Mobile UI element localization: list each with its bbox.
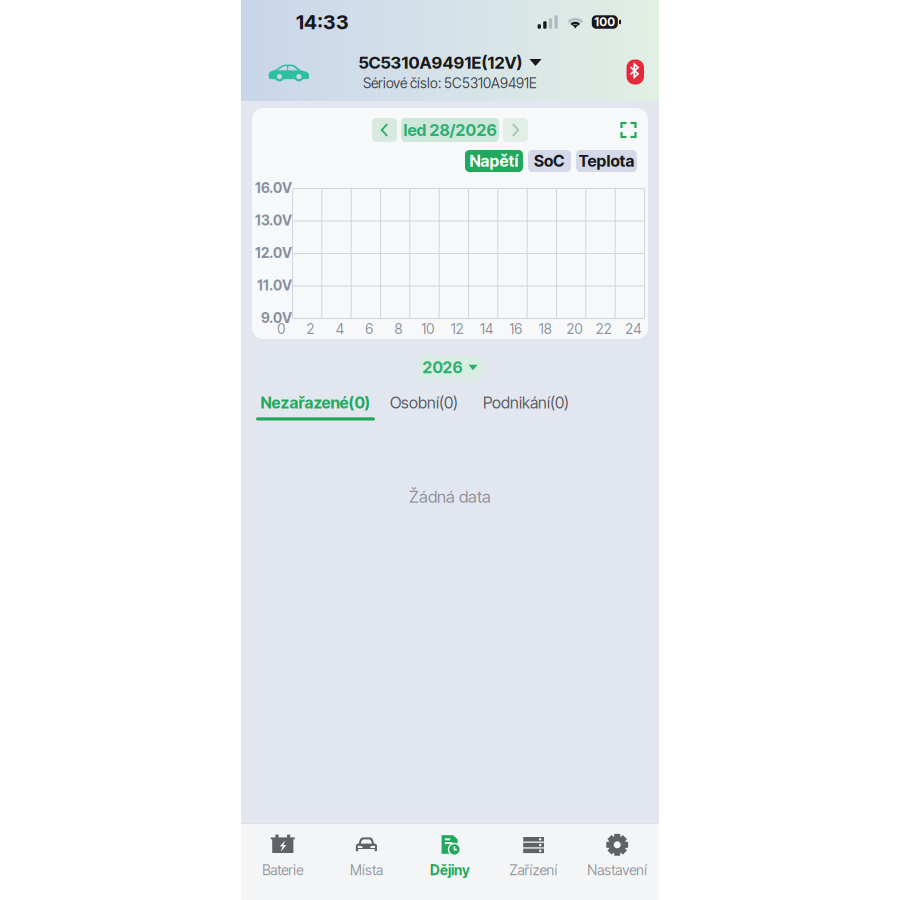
staticText: 8 xyxy=(394,320,402,337)
staticText: 10 xyxy=(421,320,434,337)
staticText: Osobní(0) xyxy=(390,393,458,412)
button[interactable]: led 28/2026 xyxy=(401,118,499,142)
staticText: 22 xyxy=(596,320,612,337)
staticText: 11.0V xyxy=(257,277,292,294)
staticText: 16.0V xyxy=(255,179,292,196)
staticText: led 28/2026 xyxy=(403,120,496,140)
button[interactable]: 5C5310A9491E(12V) xyxy=(358,52,541,73)
staticText: 9.0V xyxy=(261,309,292,326)
staticText: 14:33 xyxy=(296,10,349,34)
button[interactable]: Fullscreen xyxy=(621,122,636,137)
staticText: 5C5310A9491E(12V) xyxy=(358,52,522,73)
staticText: 16 xyxy=(509,320,522,337)
button[interactable]: Osobní(0) xyxy=(386,393,462,421)
staticText: 12.0V xyxy=(255,244,292,261)
staticText: Teplota xyxy=(578,151,634,171)
button[interactable]: Teplota xyxy=(576,150,637,172)
staticText: 12 xyxy=(451,320,464,337)
staticText: 20 xyxy=(566,320,582,337)
button[interactable]: Dějiny xyxy=(408,828,492,884)
staticText: 100 xyxy=(594,15,615,29)
staticText: Dějiny xyxy=(430,862,470,879)
staticText: Sériové číslo: 5C5310A9491E xyxy=(363,75,537,92)
staticText: 0 xyxy=(277,320,285,337)
staticText: 6 xyxy=(365,320,373,337)
staticText: 2026 xyxy=(422,358,462,377)
button[interactable]: Napětí xyxy=(465,150,523,172)
staticText: 2 xyxy=(306,320,314,337)
button[interactable]: SoC xyxy=(528,150,571,172)
button[interactable]: Místa xyxy=(325,828,408,884)
button[interactable]: Baterie xyxy=(241,828,325,884)
staticText: Napětí xyxy=(469,151,518,171)
staticText: Žádná data xyxy=(409,487,491,507)
staticText: 24 xyxy=(625,320,641,337)
button[interactable]: Podnikání(0) xyxy=(478,393,574,421)
button[interactable]: Zařízení xyxy=(492,828,575,884)
staticText: 14 xyxy=(480,320,493,337)
button[interactable]: Previous day xyxy=(372,118,397,142)
staticText: Místa xyxy=(350,862,383,879)
staticText: SoC xyxy=(534,151,565,171)
staticText: 18 xyxy=(539,320,552,337)
staticText: Podnikání(0) xyxy=(483,393,569,412)
staticText: Nezařazené(0) xyxy=(260,393,370,412)
button[interactable]: Next day xyxy=(503,118,528,142)
button[interactable]: 2026 xyxy=(419,356,481,379)
staticText: 13.0V xyxy=(255,212,292,229)
staticText: 4 xyxy=(336,320,344,337)
staticText: Zařízení xyxy=(510,862,558,879)
button[interactable]: Nastavení xyxy=(575,828,659,884)
staticText: Nastavení xyxy=(587,862,647,879)
button[interactable]: Nezařazené(0) xyxy=(256,393,375,421)
button[interactable]: Bluetooth xyxy=(626,59,644,84)
staticText: Baterie xyxy=(262,862,303,879)
